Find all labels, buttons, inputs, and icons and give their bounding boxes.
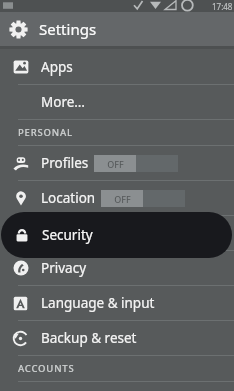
staticText: Settings xyxy=(39,19,97,39)
staticText: Apps xyxy=(41,58,73,76)
staticText: Profiles xyxy=(41,154,89,172)
button[interactable]: Toggle Location xyxy=(101,190,185,207)
button[interactable]: Backup & reset xyxy=(0,321,234,355)
staticText: More… xyxy=(41,93,86,111)
button[interactable]: Profiles xyxy=(0,146,234,180)
staticText: Backup & reset xyxy=(41,329,137,347)
staticText: Security xyxy=(42,226,93,244)
staticText: ACCOUNTS xyxy=(18,362,75,375)
staticText: OFF xyxy=(114,193,131,205)
staticText: Language & input xyxy=(41,294,155,312)
button[interactable]: Security xyxy=(1,212,232,258)
button[interactable]: Privacy xyxy=(0,251,234,285)
button[interactable]: Security xyxy=(0,216,234,250)
staticText: 17:48 xyxy=(212,1,233,12)
staticText: Privacy xyxy=(41,259,87,277)
button[interactable]: Apps xyxy=(0,50,234,84)
button[interactable]: Settings xyxy=(0,12,234,46)
button[interactable]: Location xyxy=(0,181,234,215)
staticText: Security xyxy=(41,224,92,242)
staticText: Location xyxy=(41,189,96,207)
button[interactable]: More… xyxy=(0,85,234,119)
button[interactable]: Language & input xyxy=(0,286,234,320)
staticText: PERSONAL xyxy=(18,126,73,139)
button[interactable]: Toggle Profiles xyxy=(94,155,178,172)
staticText: OFF xyxy=(107,158,124,170)
